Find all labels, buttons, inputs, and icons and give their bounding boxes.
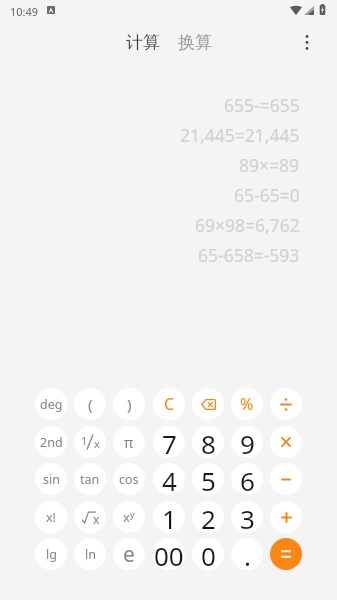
- staticText: .: [244, 538, 251, 570]
- staticText: 1: [162, 501, 177, 533]
- button[interactable]: 1: [153, 501, 185, 533]
- staticText: ): [127, 394, 132, 414]
- staticText: 7: [162, 426, 177, 458]
- staticText: 8: [201, 426, 216, 458]
- staticText: e: [123, 540, 135, 569]
- staticText: 6: [240, 463, 255, 495]
- staticText: 1: [81, 433, 88, 448]
- button[interactable]: 655-=655: [0, 90, 300, 120]
- button[interactable]: π: [113, 426, 145, 458]
- button[interactable]: 8: [192, 426, 224, 458]
- button[interactable]: x!: [35, 501, 67, 533]
- staticText: 0: [201, 538, 216, 570]
- button[interactable]: 0: [192, 538, 224, 570]
- staticText: 21,445=21,445: [180, 123, 300, 147]
- staticText: 5: [201, 463, 216, 495]
- button[interactable]: 2: [192, 501, 224, 533]
- button[interactable]: ): [113, 388, 145, 420]
- staticText: ln: [85, 546, 96, 563]
- button[interactable]: [270, 463, 302, 495]
- button[interactable]: More options: [287, 22, 327, 62]
- button[interactable]: deg: [35, 388, 67, 420]
- staticText: 65-65=0: [234, 183, 300, 207]
- button[interactable]: 69×98=6,762: [0, 210, 300, 240]
- button[interactable]: C: [153, 388, 185, 420]
- staticText: tan: [80, 471, 100, 488]
- button[interactable]: 21,445=21,445: [0, 120, 300, 150]
- staticText: C: [164, 393, 175, 415]
- button[interactable]: [270, 426, 302, 458]
- button[interactable]: 00: [153, 538, 185, 570]
- button[interactable]: e: [113, 538, 145, 570]
- staticText: 655-=655: [224, 93, 300, 117]
- staticText: 4: [162, 463, 177, 495]
- staticText: x: [93, 511, 100, 524]
- staticText: 3: [240, 501, 255, 533]
- button[interactable]: tan: [74, 463, 106, 495]
- button[interactable]: (: [74, 388, 106, 420]
- staticText: deg: [40, 396, 63, 413]
- button[interactable]: 65-65=0: [0, 180, 300, 210]
- staticText: lg: [46, 546, 57, 563]
- button[interactable]: ln: [74, 538, 106, 570]
- button[interactable]: .: [231, 538, 263, 570]
- staticText: 65-658=-593: [198, 243, 300, 267]
- button[interactable]: 3: [231, 501, 263, 533]
- button[interactable]: lg: [35, 538, 67, 570]
- button[interactable]: sin: [35, 463, 67, 495]
- staticText: 计算: [126, 32, 160, 53]
- button[interactable]: Backspace: [192, 388, 224, 420]
- button[interactable]: x: [74, 501, 106, 533]
- button[interactable]: 7: [153, 426, 185, 458]
- staticText: sin: [43, 471, 60, 488]
- staticText: (: [88, 394, 93, 414]
- button[interactable]: cos: [113, 463, 145, 495]
- staticText: cos: [119, 471, 139, 488]
- button[interactable]: 换算: [175, 27, 215, 58]
- button[interactable]: 65-658=-593: [0, 240, 300, 270]
- button[interactable]: [270, 501, 302, 533]
- button[interactable]: 4: [153, 463, 185, 495]
- button[interactable]: 2nd: [35, 426, 67, 458]
- staticText: %: [240, 393, 254, 415]
- staticText: 换算: [178, 32, 212, 53]
- button[interactable]: 89×=89: [0, 150, 300, 180]
- button[interactable]: Equals: [270, 538, 302, 570]
- staticText: xy: [123, 508, 135, 526]
- button[interactable]: %: [231, 388, 263, 420]
- staticText: 89×=89: [239, 153, 300, 177]
- button[interactable]: 计算: [123, 27, 163, 58]
- button[interactable]: 6: [231, 463, 263, 495]
- staticText: 00: [154, 538, 184, 570]
- staticText: x!: [46, 509, 56, 526]
- button[interactable]: 9: [231, 426, 263, 458]
- staticText: π: [124, 433, 134, 452]
- button[interactable]: 1: [74, 426, 106, 458]
- button[interactable]: 5: [192, 463, 224, 495]
- staticText: 2nd: [40, 434, 63, 451]
- staticText: 10:49: [10, 4, 39, 19]
- staticText: 9: [240, 426, 255, 458]
- button[interactable]: xy: [113, 501, 145, 533]
- staticText: x: [94, 436, 100, 451]
- button[interactable]: [270, 388, 302, 420]
- staticText: 69×98=6,762: [195, 213, 300, 237]
- staticText: 2: [201, 501, 216, 533]
